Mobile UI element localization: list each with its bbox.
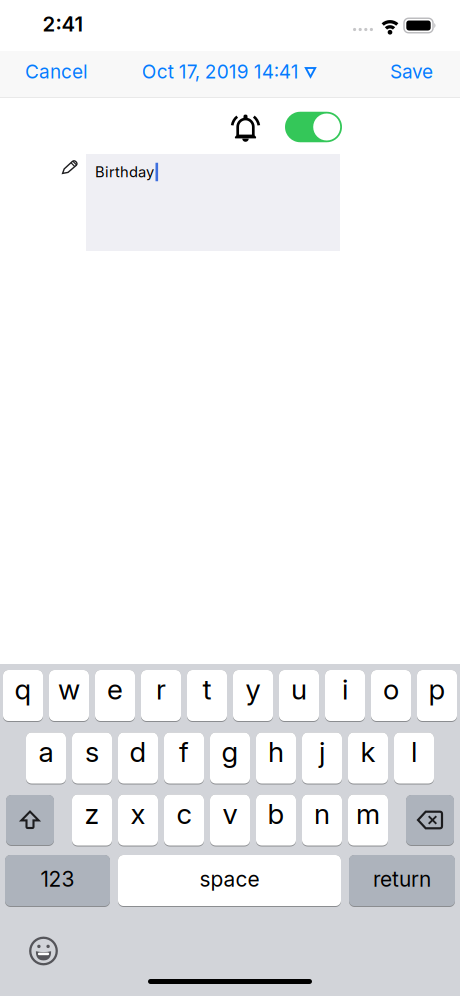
button[interactable]: f	[164, 732, 204, 784]
staticText: h	[268, 735, 284, 769]
button[interactable]: return	[349, 855, 455, 907]
button[interactable]: a	[26, 732, 66, 784]
staticText: y	[245, 672, 260, 706]
button[interactable]: space	[118, 855, 341, 907]
staticText: s	[85, 735, 99, 769]
staticText: Save	[390, 60, 433, 83]
button[interactable]: Save	[390, 60, 433, 83]
button[interactable]: q	[3, 670, 43, 722]
button[interactable]: o	[371, 670, 411, 722]
staticText: n	[314, 797, 330, 831]
staticText: x	[130, 797, 145, 831]
staticText: Oct 17, 2019 14:41	[142, 60, 299, 83]
button[interactable]: k	[348, 732, 388, 784]
staticText: 123	[40, 866, 74, 892]
staticText: g	[221, 735, 238, 769]
staticText: space	[199, 866, 259, 892]
button[interactable]: h	[256, 732, 296, 784]
staticText: f	[179, 735, 189, 769]
staticText: b	[267, 797, 284, 831]
staticText: i	[342, 672, 348, 706]
button[interactable]: Delete	[406, 795, 454, 846]
button[interactable]: Alarm	[230, 114, 260, 142]
button[interactable]: b	[256, 794, 296, 846]
button[interactable]: c	[164, 794, 204, 846]
button[interactable]: j	[302, 732, 342, 784]
staticText: p	[428, 672, 445, 706]
staticText: w	[58, 672, 80, 706]
staticText: u	[291, 672, 307, 706]
staticText: a	[38, 735, 53, 769]
staticText: r	[156, 672, 166, 706]
staticText: 2:41	[42, 12, 83, 36]
staticText: k	[360, 735, 375, 769]
staticText: m	[356, 797, 380, 831]
button[interactable]: Reminder on	[285, 112, 342, 142]
button[interactable]: p	[417, 670, 457, 722]
button[interactable]: d	[118, 732, 158, 784]
staticText: c	[176, 797, 191, 831]
staticText: e	[107, 672, 123, 706]
staticText: q	[14, 672, 31, 706]
staticText: d	[129, 735, 146, 769]
staticText: Cancel	[25, 60, 88, 83]
button[interactable]: g	[210, 732, 250, 784]
button[interactable]: w	[49, 670, 89, 722]
button[interactable]: l	[394, 732, 434, 784]
staticText: l	[411, 735, 417, 769]
button[interactable]: Shift	[6, 795, 54, 846]
button[interactable]: x	[118, 794, 158, 846]
button[interactable]: t	[187, 670, 227, 722]
staticText: t	[202, 672, 211, 706]
button[interactable]: u	[279, 670, 319, 722]
staticText: return	[373, 866, 431, 892]
button[interactable]: i	[325, 670, 365, 722]
button[interactable]: z	[72, 794, 112, 846]
staticText: o	[383, 672, 399, 706]
button[interactable]: Emoji	[29, 937, 57, 965]
button[interactable]: r	[141, 670, 181, 722]
button[interactable]: e	[95, 670, 135, 722]
staticText: Birthday	[95, 163, 154, 181]
button[interactable]: y	[233, 670, 273, 722]
button[interactable]: Oct 17, 2019 14:41	[142, 60, 316, 83]
button[interactable]: Cancel	[25, 60, 88, 83]
staticText: j	[319, 735, 325, 769]
button[interactable]: v	[210, 794, 250, 846]
button[interactable]: s	[72, 732, 112, 784]
staticText: v	[222, 797, 237, 831]
button[interactable]: m	[348, 794, 388, 846]
button[interactable]: 123	[5, 855, 110, 907]
button[interactable]: n	[302, 794, 342, 846]
staticText: z	[84, 797, 99, 831]
